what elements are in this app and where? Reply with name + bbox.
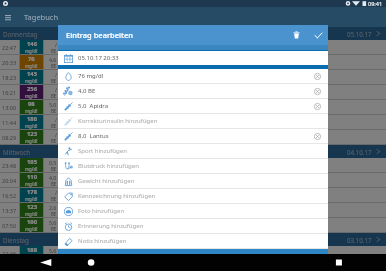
staticText: 09:41 [368,0,383,7]
button[interactable]: 22:47 [0,40,386,54]
staticText: 110 [27,173,37,181]
button[interactable]: 18:23 [0,70,386,84]
staticText: mg/dl [25,226,38,232]
staticText: BE [51,48,57,54]
button[interactable]: Gewicht hinzufügen [58,174,328,188]
staticText: 4,0 [49,261,57,268]
staticText: / [55,131,57,138]
staticText: BE [51,93,57,99]
button[interactable]: 05.10.17 20:33 [58,51,328,65]
button[interactable]: Foto hinzufügen [58,204,328,218]
staticText: / [55,189,57,196]
button[interactable]: Mittwoch [0,145,386,158]
staticText: 22:46 [2,250,17,257]
staticText: BE [51,166,57,172]
staticText: 76 [28,55,35,63]
staticText: 18:23 [2,74,17,81]
button[interactable]: Erinnerung hinzufügen [58,219,328,233]
staticText: 07:50 [2,222,17,229]
staticText: BE [51,254,57,260]
button[interactable]: 5,0 Apidra [58,99,328,113]
button[interactable]: Remove value [311,70,324,83]
staticText: mg/dl [25,123,38,129]
button[interactable]: Sport hinzufügen [58,144,328,158]
button[interactable]: 07:50 [0,218,386,232]
button[interactable]: 20:33 [0,55,386,69]
button[interactable]: Dienstag [0,233,386,246]
staticText: 16:52 [2,192,17,199]
staticText: mg/dl [25,63,38,69]
staticText: mg/dl [25,78,38,84]
staticText: 4,0 [49,174,57,181]
button[interactable]: 11:44 [0,115,386,129]
staticText: 13:00 [2,104,17,111]
button[interactable]: 16:21 [0,85,386,99]
button[interactable]: Delete entry [288,27,304,43]
button[interactable]: Blutdruck hinzufügen [58,159,328,173]
button[interactable]: Save entry [310,27,326,43]
button[interactable]: Remove value [311,85,324,98]
staticText: 98 [28,100,35,108]
button[interactable]: Remove value [311,100,324,113]
button[interactable]: 76 mg/dl [58,69,328,83]
button[interactable]: 20:04 [0,173,386,187]
button[interactable]: Korrekturinsulin hinzufügen [58,114,328,128]
button[interactable]: 13:37 [0,203,386,217]
staticText: 123 [27,203,37,211]
staticText: 256 [27,85,37,93]
staticText: Foto hinzufügen [78,207,125,215]
staticText: Eintrag bearbeiten [66,30,133,40]
staticText: BE [51,108,57,114]
staticText: 11:44 [2,119,17,126]
staticText: 4,6 [49,56,57,63]
staticText: 20:04 [2,177,17,184]
button[interactable]: Open navigation drawer [1,7,15,27]
staticText: 0,5 [49,159,57,166]
staticText: 05.10.17 20:33 [78,54,119,62]
button[interactable]: 8,0 Lantus [58,129,328,143]
staticText: mg/dl [25,211,38,217]
button[interactable]: Notiz hinzufügen [58,234,328,248]
staticText: 22:47 [2,44,17,51]
button[interactable]: Donnerstag [0,27,386,40]
staticText: 76 mg/dl [78,72,104,80]
staticText: BE [51,123,57,129]
staticText: / [55,71,57,78]
button[interactable]: 13:00 [0,100,386,114]
staticText: Tagebuch [24,12,59,22]
button[interactable]: 4,0 BE [58,84,328,98]
staticText: mg/dl [25,181,38,187]
button[interactable]: 08:29 [0,130,386,144]
staticText: 8,0 Lantus [78,132,109,140]
staticText: Korrekturinsulin hinzufügen [78,117,158,125]
staticText: 23:48 [2,162,17,169]
staticText: 105 [27,158,37,166]
staticText: mg/dl [25,48,38,54]
button[interactable]: Kennzeichnung hinzufügen [58,189,328,203]
staticText: / [55,116,57,123]
staticText: BE [51,226,57,232]
button[interactable]: 19:12 [0,261,386,271]
button[interactable]: Remove value [311,130,324,143]
staticText: BE [51,138,57,144]
staticText: BE [51,211,57,217]
staticText: Sport hinzufügen [78,147,127,155]
staticText: 5,0 [49,101,57,108]
staticText: 145 [27,70,37,78]
button[interactable]: 22:46 [0,246,386,260]
staticText: 20:33 [2,59,17,66]
staticText: mg/dl [25,93,38,99]
staticText: Mittwoch [3,148,31,156]
staticText: BE [51,63,57,69]
staticText: 100 [27,218,37,226]
staticText: 146 [27,40,37,48]
button[interactable]: 16:52 [0,188,386,202]
staticText: 178 [27,188,37,196]
staticText: 04.10.17 [347,148,372,156]
button[interactable]: 23:48 [0,158,386,172]
